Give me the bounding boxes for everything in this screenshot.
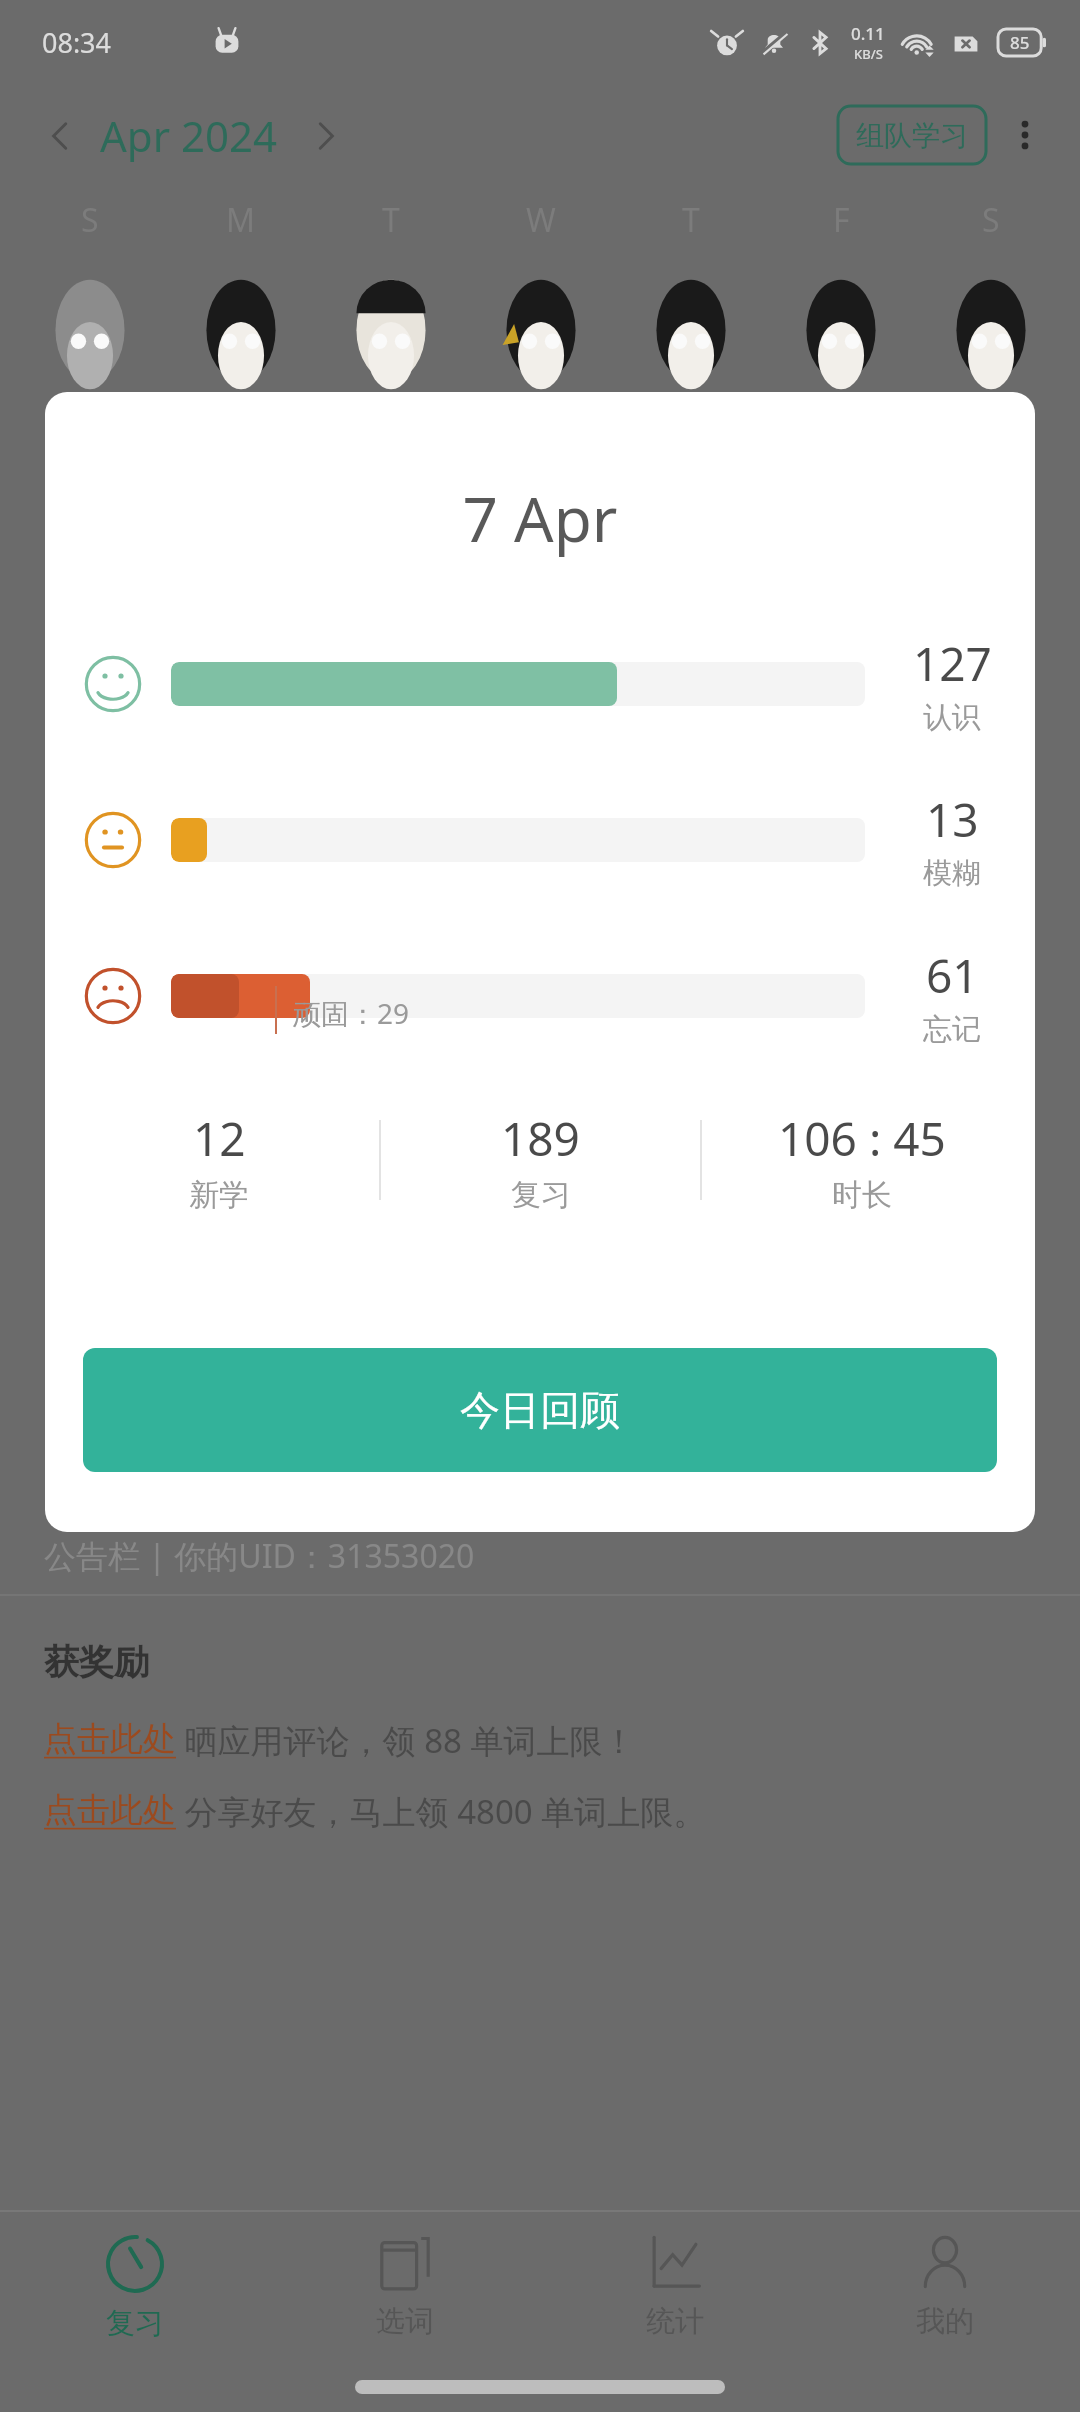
staticText: 顽固：29 <box>293 994 410 1032</box>
staticText: 61 <box>926 944 979 1007</box>
staticText: 0.11 <box>851 22 885 45</box>
button[interactable]: Day 2 <box>193 274 289 370</box>
button[interactable]: Day 4 <box>493 274 589 370</box>
staticText: 公告栏 | 你的UID：31353020 <box>44 1534 475 1578</box>
staticText: T <box>382 198 400 242</box>
button[interactable]: 组队学习 <box>838 106 986 164</box>
staticText: Apr 2024 <box>100 107 278 164</box>
staticText: 复习 <box>511 1176 571 1214</box>
staticText: 晒应用评论，领 88 单词上限！ <box>176 1718 636 1763</box>
staticText: 13 <box>926 788 979 851</box>
staticText: 忘记 <box>923 1011 981 1048</box>
staticText: 复习 <box>106 2305 164 2342</box>
staticText: 点击此处 <box>44 1789 176 1831</box>
button[interactable]: 今日回顾 <box>83 1348 997 1472</box>
staticText: 189 <box>501 1107 580 1170</box>
button[interactable]: Previous month <box>32 108 88 164</box>
staticText: 认识 <box>923 699 981 736</box>
staticText: 获奖励 <box>44 1640 149 1684</box>
button[interactable]: 189 <box>381 1094 700 1226</box>
button[interactable]: Day 7 <box>943 274 1039 370</box>
staticText: 85 <box>1010 31 1030 54</box>
staticText: 时长 <box>832 1176 892 1214</box>
button[interactable]: 106 : 45 <box>702 1094 1021 1226</box>
button[interactable]: Day 3 <box>343 274 439 370</box>
staticText: 选词 <box>376 2303 434 2340</box>
button[interactable]: 选词 <box>270 2212 540 2362</box>
staticText: 点击此处 <box>44 1718 176 1760</box>
staticText: 7 Apr <box>45 476 1035 560</box>
button[interactable]: 12 <box>59 1094 379 1226</box>
button[interactable]: 点击此处 <box>44 1789 707 1834</box>
staticText: 12 <box>193 1107 246 1170</box>
staticText: 08:34 <box>42 24 112 61</box>
button[interactable]: Day 6 <box>793 274 889 370</box>
staticText: 我的 <box>916 2303 974 2340</box>
staticText: F <box>833 198 850 242</box>
staticText: KB/S <box>854 45 883 63</box>
staticText: 统计 <box>646 2303 704 2340</box>
staticText: 分享好友，马上领 4800 单词上限。 <box>176 1789 707 1834</box>
staticText: 组队学习 <box>856 118 968 153</box>
staticText: 今日回顾 <box>460 1385 620 1435</box>
button[interactable]: 点击此处 <box>44 1718 636 1763</box>
staticText: W <box>526 198 556 242</box>
staticText: 新学 <box>189 1176 249 1214</box>
staticText: S <box>982 198 1000 242</box>
staticText: 127 <box>913 632 992 695</box>
button[interactable]: Day 1 <box>42 274 138 370</box>
staticText: 模糊 <box>923 855 981 892</box>
button[interactable]: 复习 <box>0 2212 270 2362</box>
button[interactable]: Next month <box>298 108 354 164</box>
staticText: 106 : 45 <box>778 1107 946 1170</box>
staticText: T <box>682 198 700 242</box>
staticText: S <box>81 198 99 242</box>
staticText: M <box>226 198 256 242</box>
button[interactable]: More options <box>994 104 1056 166</box>
button[interactable]: Day 5 <box>643 274 739 370</box>
